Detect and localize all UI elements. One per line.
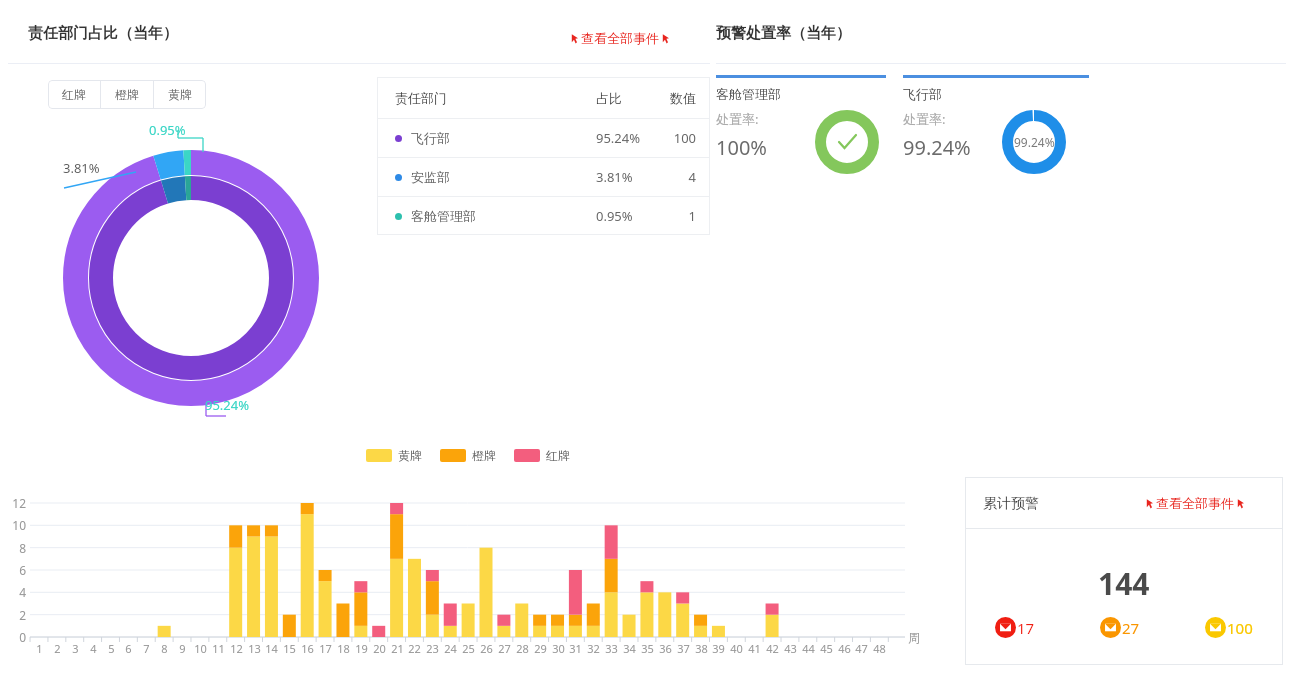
staticText: 1 (36, 641, 43, 656)
staticText: 6 (125, 641, 132, 656)
other: 预警 27 (1100, 617, 1121, 638)
staticText: 橙牌 (115, 87, 139, 102)
staticText: 19 (355, 641, 368, 656)
button[interactable]: 查看全部事件 (568, 29, 673, 47)
staticText: 47 (855, 641, 868, 656)
staticText: 22 (408, 641, 421, 656)
staticText: 33 (605, 641, 618, 656)
staticText: 处置率: (716, 110, 759, 128)
staticText: 100 (1227, 618, 1253, 638)
staticText: 飞行部 (411, 130, 450, 146)
button[interactable]: 橙牌 (101, 80, 153, 109)
button[interactable]: 飞行部 (377, 119, 710, 157)
staticText: 144 (1098, 563, 1150, 604)
staticText: 4 (19, 584, 26, 600)
staticText: 41 (748, 641, 761, 656)
staticText: 31 (569, 641, 582, 656)
staticText: 0 (19, 629, 26, 645)
staticText: 40 (730, 641, 743, 656)
staticText: 34 (623, 641, 636, 656)
button[interactable]: 客舱管理部 (377, 197, 710, 235)
button[interactable]: 预警 27 (1100, 617, 1140, 638)
staticText: 红牌 (62, 87, 86, 102)
staticText: 12 (12, 495, 26, 511)
staticText: 24 (444, 641, 457, 656)
staticText: 橙牌 (472, 448, 496, 463)
staticText: 4 (662, 168, 696, 186)
staticText: 30 (552, 641, 565, 656)
staticText: 1 (662, 207, 696, 225)
staticText: 43 (784, 641, 797, 656)
button[interactable]: 查看全部事件 (1143, 494, 1248, 512)
staticText: 查看全部事件 (1156, 495, 1234, 511)
button[interactable]: 黄牌 (154, 80, 206, 109)
other: 预警 100 (1205, 617, 1226, 638)
staticText: 9 (179, 641, 186, 656)
staticText: 黄牌 (168, 87, 192, 102)
staticText: 27 (498, 641, 511, 656)
staticText: 10 (12, 517, 26, 533)
staticText: 处置率: (903, 110, 946, 128)
staticText: 100 (662, 129, 696, 147)
staticText: 25 (462, 641, 475, 656)
staticText: 3 (72, 641, 79, 656)
staticText: 红牌 (546, 448, 570, 463)
staticText: 客舱管理部 (411, 208, 476, 224)
staticText: 安监部 (411, 169, 450, 185)
staticText: 2 (19, 607, 26, 623)
staticText: 0.95% (596, 207, 662, 225)
staticText: 42 (766, 641, 779, 656)
staticText: 99.24% (903, 134, 971, 161)
other: 预警 17 (995, 617, 1016, 638)
staticText: 12 (230, 641, 243, 656)
staticText: 16 (301, 641, 314, 656)
staticText: 查看全部事件 (581, 30, 659, 46)
button[interactable]: 预警 100 (1205, 617, 1253, 638)
staticText: 23 (426, 641, 439, 656)
staticText: 28 (516, 641, 529, 656)
staticText: 责任部门占比（当年） (28, 24, 178, 43)
staticText: 4 (90, 641, 97, 656)
staticText: 周 (908, 630, 920, 645)
staticText: 17 (1017, 618, 1035, 638)
staticText: 46 (838, 641, 851, 656)
staticText: 29 (534, 641, 547, 656)
staticText: 26 (480, 641, 493, 656)
staticText: 15 (283, 641, 296, 656)
staticText: 8 (19, 540, 26, 556)
staticText: 占比 (596, 90, 662, 106)
staticText: 0.95% (149, 121, 186, 139)
staticText: 36 (659, 641, 672, 656)
staticText: 累计预警 (983, 495, 1039, 513)
staticText: 38 (695, 641, 708, 656)
staticText: 39 (712, 641, 725, 656)
button[interactable]: 红牌 (48, 80, 100, 109)
staticText: 黄牌 (398, 448, 422, 463)
staticText: 37 (677, 641, 690, 656)
staticText: 99.24% (1014, 134, 1055, 150)
staticText: 客舱管理部 (716, 86, 781, 102)
staticText: 44 (802, 641, 815, 656)
staticText: 6 (19, 562, 26, 578)
staticText: 2 (54, 641, 61, 656)
staticText: 飞行部 (903, 86, 942, 102)
staticText: 13 (248, 641, 261, 656)
staticText: 32 (587, 641, 600, 656)
staticText: 100% (716, 134, 767, 161)
staticText: 数值 (662, 90, 696, 106)
staticText: 7 (143, 641, 150, 656)
staticText: 3.81% (596, 168, 662, 186)
button[interactable]: 预警 17 (995, 617, 1035, 638)
staticText: 责任部门 (395, 90, 596, 106)
staticText: 8 (161, 641, 168, 656)
staticText: 18 (337, 641, 350, 656)
staticText: 95.24% (205, 396, 250, 414)
staticText: 35 (641, 641, 654, 656)
button[interactable]: 安监部 (377, 158, 710, 196)
staticText: 21 (391, 641, 404, 656)
staticText: 45 (820, 641, 833, 656)
staticText: 3.81% (63, 159, 100, 177)
staticText: 11 (212, 641, 225, 656)
staticText: 10 (194, 641, 207, 656)
staticText: 5 (108, 641, 115, 656)
